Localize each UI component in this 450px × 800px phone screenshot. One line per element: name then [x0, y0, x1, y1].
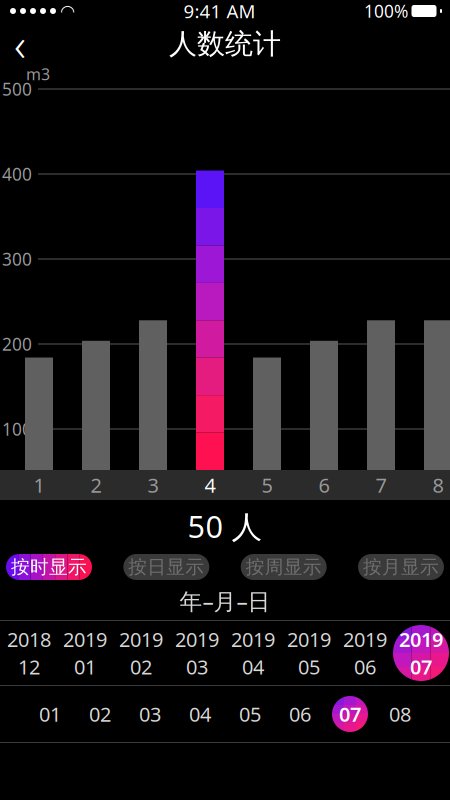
staticText: 9:41 AM [183, 0, 255, 23]
staticText: 1 [33, 472, 44, 498]
staticText: 05 [298, 653, 320, 680]
staticText: 2019 [399, 626, 443, 652]
staticText: 06 [289, 701, 311, 727]
staticText: 500 [2, 77, 32, 100]
staticText: 07 [339, 701, 361, 727]
staticText: 按月显示 [363, 555, 439, 578]
staticText: 08 [389, 701, 411, 727]
staticText: 50 人 [187, 506, 262, 546]
button[interactable]: 2019 [57, 623, 113, 683]
button[interactable]: 04 [175, 690, 225, 738]
staticText: 2019 [231, 626, 275, 652]
staticText: ◠ [60, 1, 75, 21]
staticText: 2019 [119, 626, 163, 652]
button[interactable]: 01 [25, 690, 75, 738]
staticText: 300 [2, 247, 32, 270]
staticText: 06 [354, 653, 376, 680]
staticText: 01 [74, 653, 96, 680]
button[interactable]: 2019 [225, 623, 281, 683]
staticText: 4 [204, 472, 215, 498]
button[interactable]: 2018 [1, 623, 57, 683]
staticText: 年–月–日 [179, 586, 270, 616]
staticText: 2018 [7, 626, 51, 652]
staticText: 03 [186, 653, 208, 680]
staticText: 05 [239, 701, 261, 727]
staticText: 12 [18, 653, 40, 680]
staticText: 3 [147, 472, 158, 498]
staticText: 04 [242, 653, 264, 680]
staticText: m3 [26, 63, 50, 85]
button[interactable]: 03 [125, 690, 175, 738]
staticText: 8 [432, 472, 443, 498]
staticText: 2 [90, 472, 101, 498]
button[interactable]: 按周显示 [241, 554, 327, 580]
button[interactable]: 2019 [393, 623, 449, 683]
staticText: 200 [2, 332, 32, 355]
staticText: 按日显示 [128, 555, 204, 578]
staticText: 400 [2, 162, 32, 185]
staticText: 07 [410, 653, 432, 680]
button[interactable]: 2019 [281, 623, 337, 683]
staticText: 100% [364, 0, 408, 22]
staticText: 按时显示 [11, 555, 87, 578]
button[interactable]: 02 [75, 690, 125, 738]
staticText: 2019 [343, 626, 387, 652]
staticText: 人数统计 [169, 27, 281, 61]
staticText: 7 [375, 472, 386, 498]
staticText: 03 [139, 701, 161, 727]
button[interactable]: 按月显示 [358, 554, 444, 580]
staticText: ‹ [14, 14, 26, 74]
staticText: 02 [130, 653, 152, 680]
button[interactable]: 06 [275, 690, 325, 738]
staticText: 2019 [63, 626, 107, 652]
staticText: 100 [2, 417, 32, 440]
staticText: 6 [318, 472, 329, 498]
button[interactable]: 08 [375, 690, 425, 738]
button[interactable]: 2019 [113, 623, 169, 683]
button[interactable]: 2019 [337, 623, 393, 683]
button[interactable]: 07 [325, 690, 375, 738]
staticText: 04 [189, 701, 211, 727]
button[interactable]: 2019 [169, 623, 225, 683]
staticText: 5 [261, 472, 272, 498]
button[interactable]: 按日显示 [123, 554, 209, 580]
staticText: 2019 [287, 626, 331, 652]
staticText: 按周显示 [246, 555, 322, 578]
button[interactable]: 05 [225, 690, 275, 738]
staticText: 02 [89, 701, 111, 727]
staticText: 2019 [175, 626, 219, 652]
button[interactable]: 按时显示 [6, 554, 92, 580]
staticText: 01 [39, 701, 61, 727]
button[interactable]: Back [0, 22, 42, 66]
